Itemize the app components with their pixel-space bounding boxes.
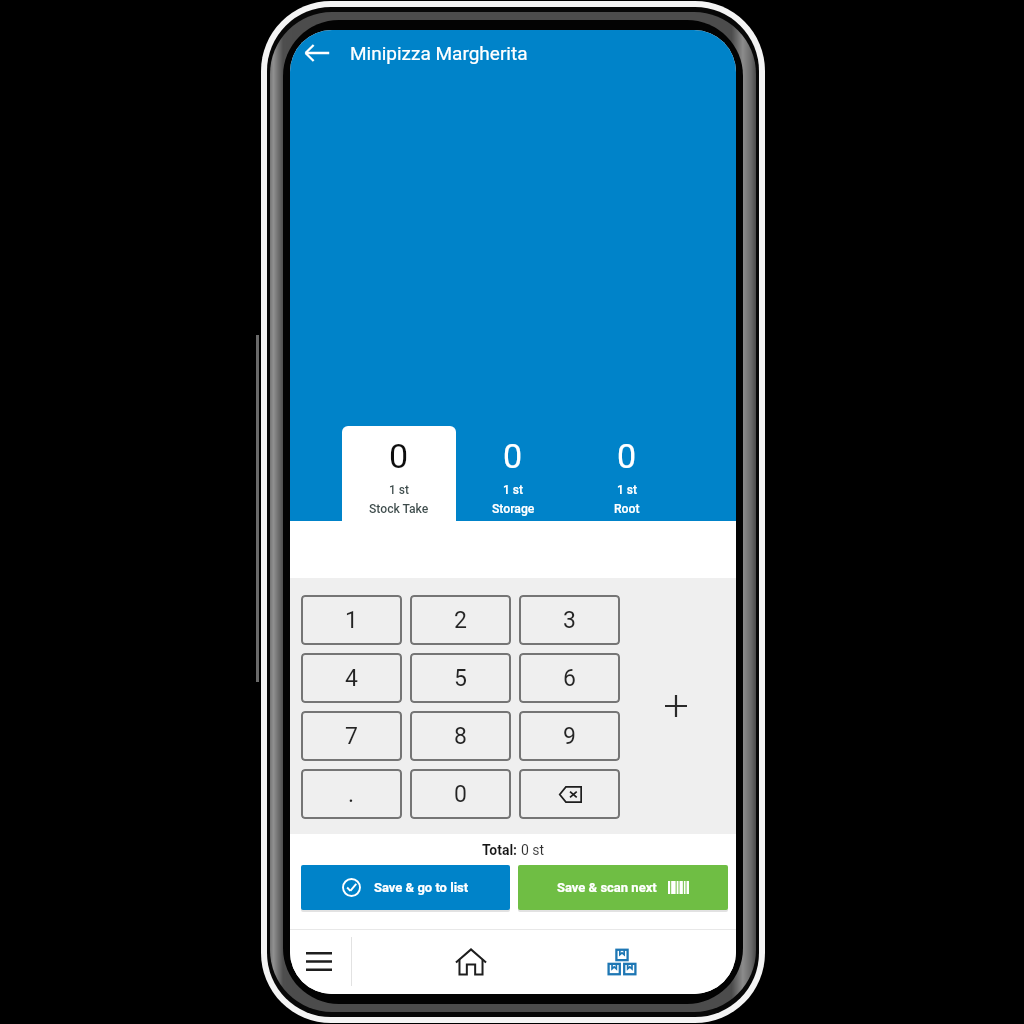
button[interactable]: 0 bbox=[570, 426, 684, 521]
staticText: 5 bbox=[454, 665, 467, 692]
staticText: 1 st bbox=[617, 483, 638, 497]
button[interactable]: 3 bbox=[519, 595, 620, 645]
staticText: 4 bbox=[345, 665, 358, 692]
button[interactable]: 0 bbox=[456, 426, 570, 521]
button[interactable]: 0 bbox=[342, 426, 456, 521]
button[interactable]: 2 bbox=[410, 595, 511, 645]
button[interactable]: Save & scan next bbox=[518, 865, 728, 910]
staticText: 9 bbox=[563, 723, 576, 750]
button[interactable]: Stock bbox=[546, 929, 698, 994]
staticText: 0 bbox=[503, 436, 523, 476]
staticText: 0 st bbox=[521, 842, 545, 858]
button[interactable]: Back bbox=[294, 30, 340, 76]
button[interactable]: 9 bbox=[519, 711, 620, 761]
button[interactable]: 5 bbox=[410, 653, 511, 703]
button[interactable]: 1 bbox=[301, 595, 402, 645]
staticText: 7 bbox=[345, 723, 358, 750]
button[interactable]: 8 bbox=[410, 711, 511, 761]
staticText: Save & scan next bbox=[557, 880, 657, 895]
staticText: 1 bbox=[345, 607, 358, 634]
staticText: 0 bbox=[389, 436, 409, 476]
button[interactable]: 0 bbox=[410, 769, 511, 819]
staticText: 0 bbox=[617, 436, 637, 476]
staticText: 2 bbox=[454, 607, 467, 634]
button[interactable]: . bbox=[301, 769, 402, 819]
staticText: 0 bbox=[454, 781, 467, 808]
button[interactable]: 7 bbox=[301, 711, 402, 761]
staticText: 1 st bbox=[389, 483, 410, 497]
button[interactable]: Menu bbox=[290, 929, 350, 994]
button[interactable]: Save & go to list bbox=[301, 865, 510, 910]
staticText: . bbox=[348, 781, 355, 808]
button[interactable]: Backspace bbox=[519, 769, 620, 819]
staticText: 6 bbox=[563, 665, 576, 692]
button[interactable]: 4 bbox=[301, 653, 402, 703]
staticText: Minipizza Margherita bbox=[350, 42, 528, 64]
staticText: Root bbox=[614, 502, 640, 516]
button[interactable]: Add bbox=[658, 688, 694, 724]
button[interactable]: Home bbox=[395, 929, 547, 994]
staticText: Total: bbox=[482, 842, 521, 858]
staticText: 8 bbox=[454, 723, 467, 750]
staticText: Stock Take bbox=[369, 502, 429, 516]
staticText: 1 st bbox=[503, 483, 524, 497]
button[interactable]: 6 bbox=[519, 653, 620, 703]
staticText: Save & go to list bbox=[374, 880, 469, 895]
staticText: Storage bbox=[492, 502, 535, 516]
staticText: 3 bbox=[563, 607, 576, 634]
